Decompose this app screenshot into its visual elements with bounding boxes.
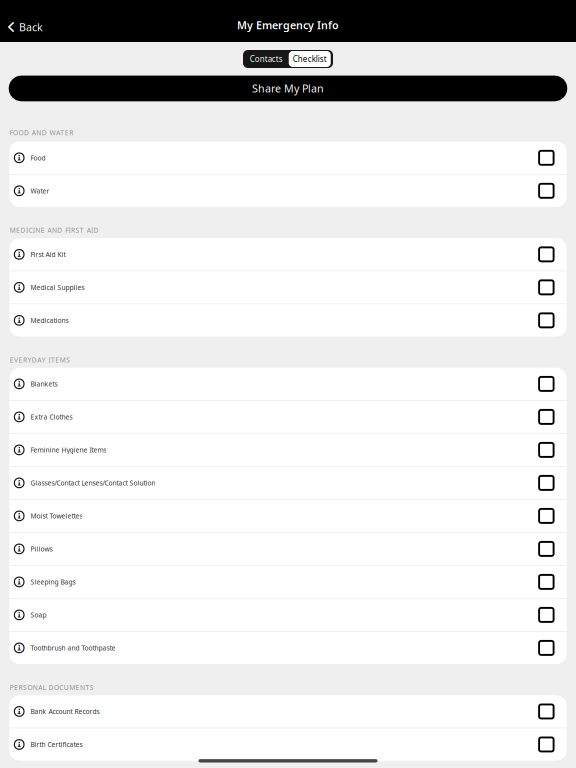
staticText: Extra Clothes bbox=[30, 412, 72, 421]
staticText: MEDICINE AND FIRST AID bbox=[10, 226, 98, 235]
staticText: Bank Account Records bbox=[30, 707, 99, 716]
button[interactable]: Back bbox=[0, 7, 43, 35]
button[interactable]: Blankets bbox=[9, 368, 567, 400]
button[interactable]: Soap bbox=[9, 599, 567, 631]
staticText: Checklist bbox=[293, 54, 327, 64]
button[interactable]: Bank Account Records bbox=[9, 695, 567, 728]
staticText: Contacts bbox=[250, 54, 283, 64]
button[interactable]: First Aid Kit bbox=[9, 238, 567, 270]
button[interactable]: Share My Plan bbox=[9, 76, 567, 101]
staticText: Feminine Hygiene Items bbox=[30, 445, 106, 454]
button[interactable]: Toothbrush and Toothpaste bbox=[9, 632, 567, 664]
staticText: FOOD AND WATER bbox=[10, 128, 73, 137]
staticText: Moist Towelettes bbox=[30, 511, 82, 520]
button[interactable]: Medications bbox=[9, 304, 567, 336]
button[interactable]: Glasses/Contact Lenses/Contact Solution bbox=[9, 467, 567, 499]
staticText: First Aid Kit bbox=[30, 250, 65, 259]
staticText: Glasses/Contact Lenses/Contact Solution bbox=[30, 478, 155, 487]
button[interactable]: Birth Certificates bbox=[9, 728, 567, 761]
staticText: Back bbox=[19, 20, 43, 34]
button[interactable]: Water bbox=[9, 175, 567, 207]
button[interactable]: Feminine Hygiene Items bbox=[9, 434, 567, 466]
staticText: Blankets bbox=[30, 379, 57, 388]
staticText: Soap bbox=[30, 610, 46, 619]
button[interactable]: Medical Supplies bbox=[9, 271, 567, 303]
staticText: My Emergency Info bbox=[237, 18, 339, 32]
staticText: Toothbrush and Toothpaste bbox=[30, 643, 115, 652]
button[interactable]: Moist Towelettes bbox=[9, 500, 567, 532]
staticText: Medications bbox=[30, 316, 68, 325]
staticText: Share My Plan bbox=[252, 81, 324, 96]
button[interactable]: Checklist bbox=[289, 51, 331, 67]
button[interactable]: Pillows bbox=[9, 533, 567, 565]
staticText: Medical Supplies bbox=[30, 283, 84, 292]
button[interactable]: Contacts bbox=[244, 50, 289, 68]
button[interactable]: Sleeping Bags bbox=[9, 566, 567, 598]
button[interactable]: Extra Clothes bbox=[9, 401, 567, 433]
staticText: Food bbox=[30, 153, 45, 162]
staticText: EVERYDAY ITEMS bbox=[10, 355, 70, 364]
staticText: Pillows bbox=[30, 544, 52, 553]
button[interactable]: Food bbox=[9, 142, 567, 174]
staticText: Sleeping Bags bbox=[30, 577, 75, 586]
staticText: Birth Certificates bbox=[30, 740, 82, 749]
staticText: Water bbox=[30, 186, 49, 195]
staticText: PERSONAL DOCUMENTS bbox=[10, 683, 94, 692]
